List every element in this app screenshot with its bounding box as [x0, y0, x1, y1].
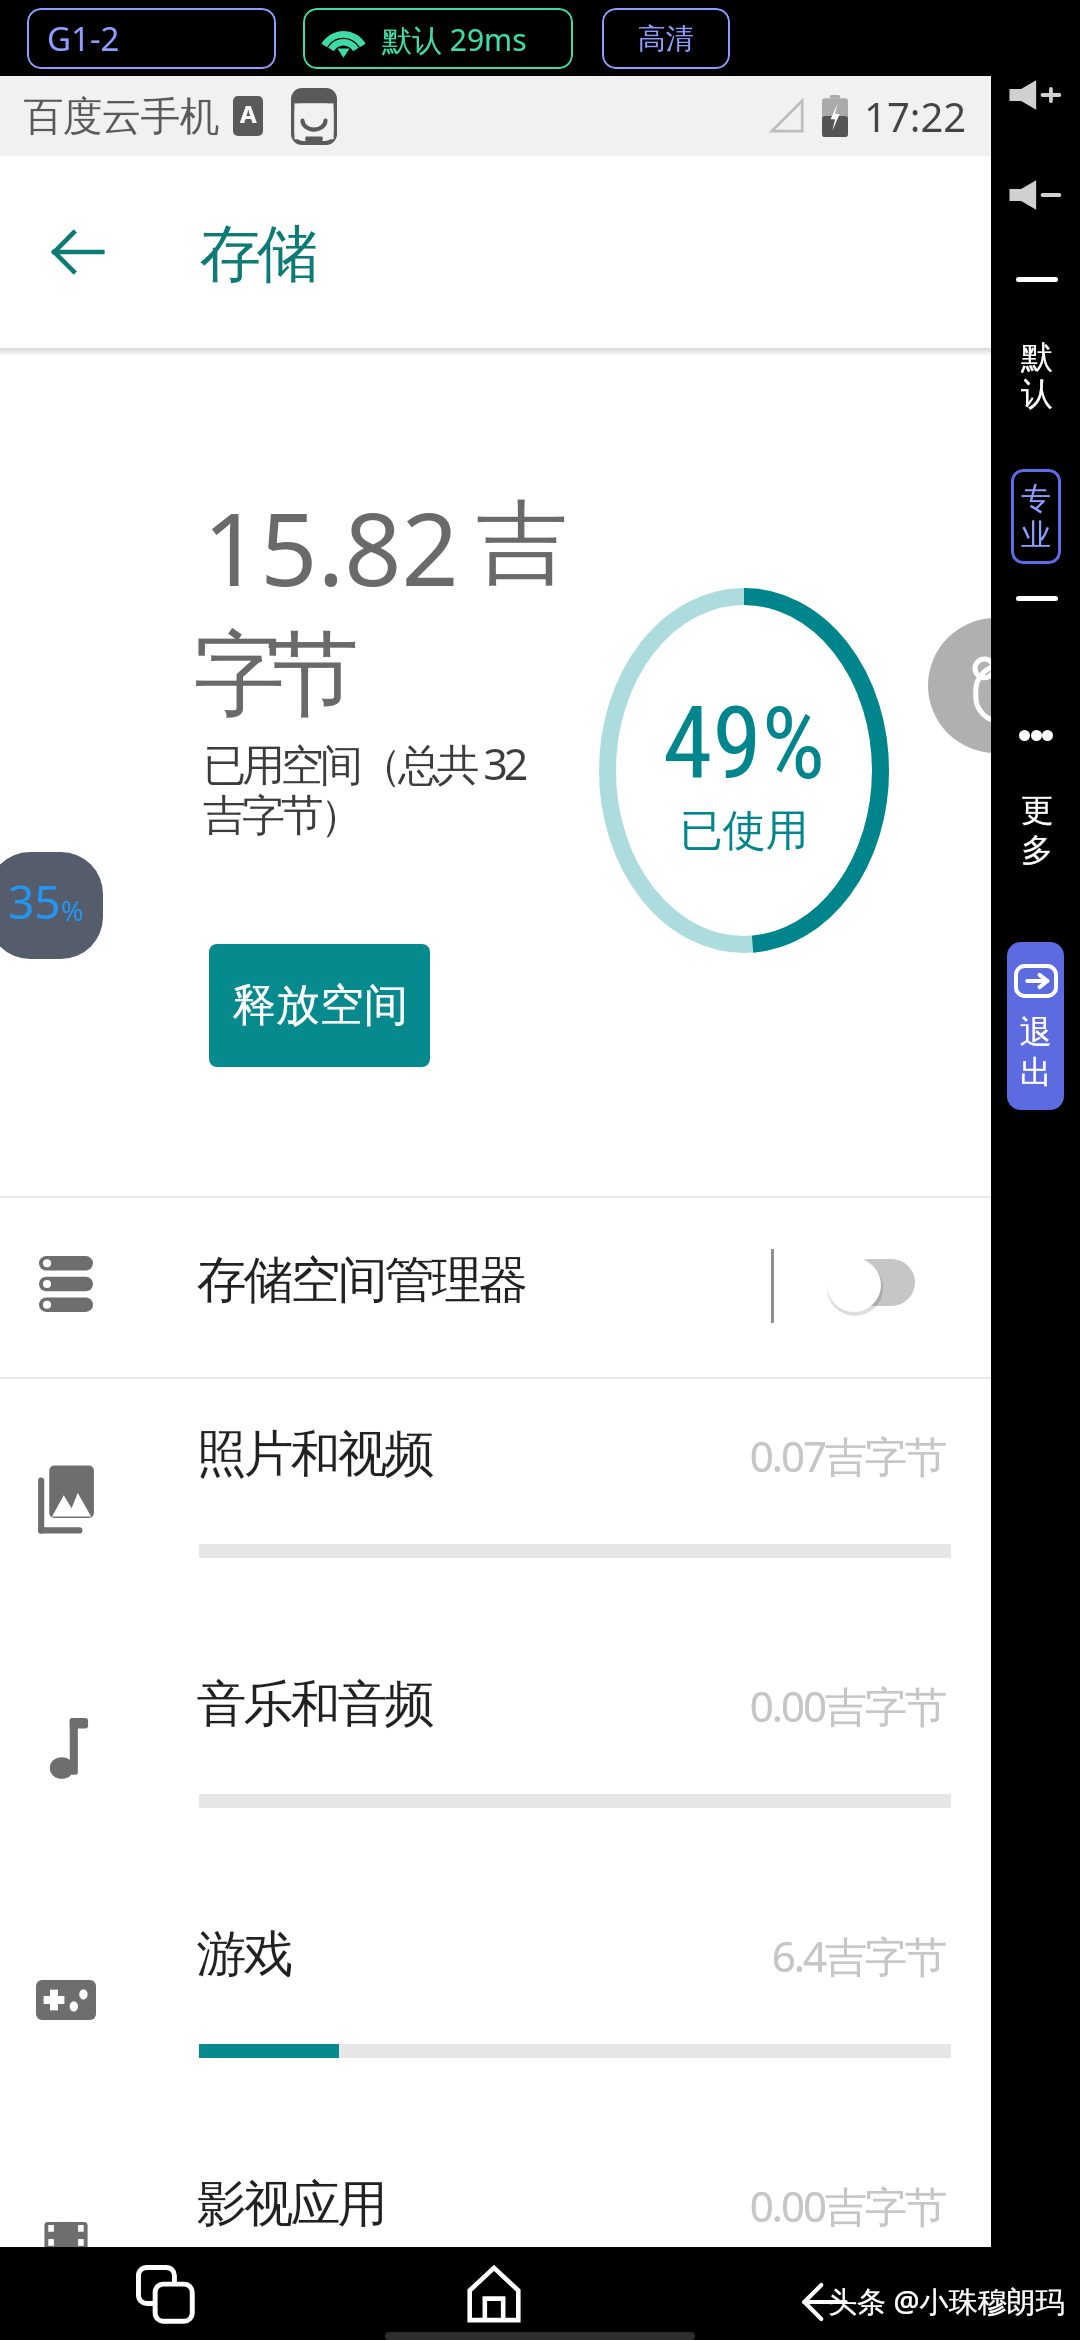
staticText: 默认 29ms: [382, 19, 527, 60]
staticText: 已使用: [599, 804, 889, 858]
button[interactable]: 默认 29ms: [303, 8, 573, 69]
staticText: 游戏: [198, 1923, 292, 1986]
staticText: 6.4吉字节: [560, 1927, 945, 1984]
staticText: 释放空间: [232, 978, 408, 1033]
staticText: 头条 @小珠穆朗玛: [828, 2281, 1065, 2321]
staticText: 0.00吉字节: [560, 2177, 945, 2234]
button[interactable]: Back: [30, 204, 126, 300]
staticText: G1-2: [47, 16, 120, 61]
staticText: 15.82: [203, 479, 459, 615]
staticText: 49%: [599, 685, 889, 802]
staticText: 字节: [202, 617, 350, 733]
button[interactable]: 照片和视频: [0, 1379, 991, 1629]
staticText: 音乐和音频: [198, 1673, 433, 1736]
staticText: 0.07吉字节: [560, 1427, 945, 1484]
staticText: 百度云手机: [24, 91, 219, 141]
staticText: 吉: [476, 486, 568, 602]
button[interactable]: Home: [446, 2247, 542, 2340]
staticText: 更 多: [1021, 790, 1053, 870]
staticText: 存储: [202, 215, 316, 293]
staticText: 17:22: [864, 89, 967, 143]
staticText: 照片和视频: [198, 1423, 433, 1486]
staticText: 0.00吉字节: [560, 1677, 945, 1734]
button[interactable]: 游戏: [0, 1879, 991, 2129]
button[interactable]: Baidu assistant: [928, 618, 1063, 753]
button[interactable]: 35: [0, 852, 103, 959]
button[interactable]: More: [1019, 730, 1053, 741]
button[interactable]: 默 认: [1012, 336, 1062, 416]
button[interactable]: 退 出: [1007, 942, 1064, 1110]
button[interactable]: Volume up: [1004, 72, 1066, 118]
button[interactable]: Back: [795, 2272, 855, 2332]
button[interactable]: 影视应用: [0, 2129, 991, 2340]
button[interactable]: 更 多: [1012, 787, 1062, 873]
staticText: 35: [8, 870, 61, 933]
button[interactable]: G1-2: [27, 8, 276, 69]
staticText: 高清: [638, 21, 694, 56]
button[interactable]: 音乐和音频: [0, 1629, 991, 1879]
button[interactable]: 专 业: [1011, 469, 1061, 564]
button[interactable]: 高清: [602, 8, 730, 69]
staticText: 默 认: [1021, 337, 1053, 415]
staticText: 吉字节）: [203, 789, 563, 843]
staticText: 存储空间管理器: [198, 1249, 527, 1312]
staticText: 已用空间（总共 32: [203, 734, 563, 793]
button[interactable]: 存储空间管理器: [0, 1198, 991, 1377]
button[interactable]: 释放空间: [209, 944, 430, 1067]
staticText: A: [240, 97, 257, 130]
staticText: 退 出: [1020, 1012, 1052, 1092]
staticText: %: [61, 892, 84, 929]
button[interactable]: Volume down: [1004, 172, 1066, 218]
staticText: 专 业: [1021, 480, 1051, 554]
staticText: 影视应用: [198, 2173, 386, 2236]
button[interactable]: Recents: [117, 2247, 213, 2340]
